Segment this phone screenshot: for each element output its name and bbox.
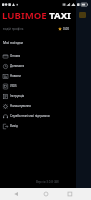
button[interactable]: Новини bbox=[0, 71, 76, 81]
staticText: Служба технічної підтримки bbox=[10, 114, 50, 118]
staticText: Оплата bbox=[10, 54, 21, 58]
staticText: Вихід bbox=[10, 124, 18, 128]
staticText: Інструкція bbox=[10, 94, 25, 98]
button[interactable]: Back bbox=[0, 188, 30, 200]
button[interactable]: Допомога bbox=[0, 61, 76, 71]
button[interactable]: Home bbox=[31, 188, 61, 200]
staticText: VIOS bbox=[10, 84, 17, 88]
button[interactable]: Вихід bbox=[0, 121, 76, 131]
button[interactable]: Служба технічної підтримки bbox=[0, 111, 76, 121]
button[interactable]: Оплата bbox=[0, 51, 76, 61]
staticText: Новини bbox=[10, 74, 21, 78]
staticText: 0.00 bbox=[63, 27, 69, 31]
button[interactable]: Recent apps bbox=[61, 188, 91, 200]
button[interactable]: Інструкція bbox=[0, 91, 76, 101]
button[interactable]: Налаштування bbox=[0, 101, 76, 111]
button[interactable]: VIOS bbox=[0, 81, 76, 91]
staticText: LUBIMOE TAXI bbox=[2, 9, 71, 22]
staticText: Допомога bbox=[10, 64, 25, 68]
staticText: водій профіль bbox=[3, 27, 24, 31]
staticText: Мої поїздки bbox=[3, 40, 24, 45]
button[interactable]: водій профіль bbox=[0, 22, 76, 33]
staticText: Налаштування bbox=[10, 104, 31, 108]
staticText: Версія 3.0.8 (48) bbox=[36, 180, 59, 184]
